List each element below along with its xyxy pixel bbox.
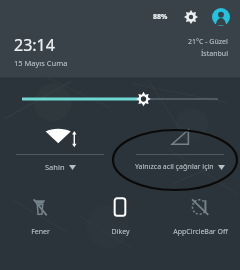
button[interactable]: Settings <box>180 6 202 28</box>
button[interactable]: Brightness <box>0 78 240 120</box>
button[interactable]: User <box>210 6 232 28</box>
staticText: AppCircleBar Off <box>173 227 228 237</box>
button[interactable]: Sahin <box>0 120 120 182</box>
button[interactable]: 21°C - Güzel <box>188 37 228 59</box>
button[interactable]: 23:14 <box>14 34 188 68</box>
button[interactable]: Yalnızca acil çağrılar için <box>120 120 240 182</box>
staticText: 21°C - Güzel <box>188 37 228 47</box>
button[interactable]: Flashlight <box>0 182 80 270</box>
button[interactable]: Rotation <box>80 182 160 270</box>
staticText: Fener <box>31 227 50 237</box>
staticText: Sahin <box>45 162 65 172</box>
staticText: 88% <box>153 12 168 22</box>
staticText: Dikey <box>111 227 130 237</box>
staticText: 15 Mayıs Cuma <box>14 58 68 68</box>
staticText: İstanbul <box>201 49 228 59</box>
button[interactable]: AppCircleBar <box>160 182 240 270</box>
staticText: Yalnızca acil çağrılar için <box>135 162 214 172</box>
staticText: 23:14 <box>14 34 55 56</box>
